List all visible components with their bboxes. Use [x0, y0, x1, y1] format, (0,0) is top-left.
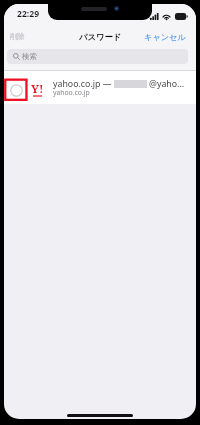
- staticText: @yaho...: [149, 78, 185, 90]
- staticText: 22:29: [17, 8, 40, 20]
- staticText: yahoo.co.jp —: [53, 78, 112, 90]
- staticText: yahoo.co.jp: [53, 88, 90, 97]
- staticText: Y!: [31, 81, 43, 97]
- staticText: 削除: [10, 32, 25, 41]
- button[interactable]: 検索: [7, 49, 188, 64]
- staticText: 検索: [22, 52, 37, 61]
- button[interactable]: Y!: [4, 71, 196, 104]
- button[interactable]: 削除: [4, 29, 31, 44]
- staticText: キャンセル: [144, 32, 186, 42]
- staticText: パスワード: [79, 32, 122, 42]
- button[interactable]: キャンセル: [138, 29, 196, 45]
